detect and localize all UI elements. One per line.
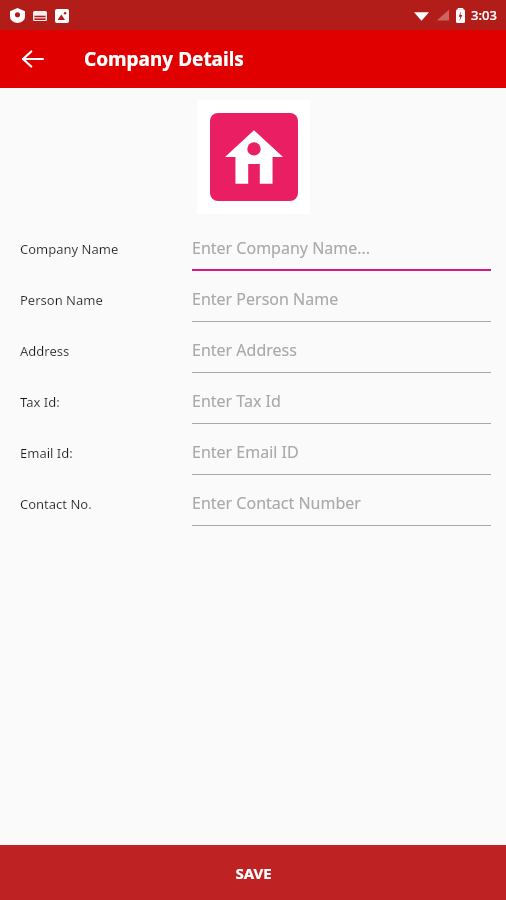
staticText: Enter Address: [192, 339, 297, 361]
staticText: Company Name: [20, 240, 119, 258]
button[interactable]: Contact No.: [0, 481, 506, 532]
button[interactable]: Email Id:: [0, 430, 506, 481]
staticText: Enter Contact Number: [192, 492, 361, 514]
staticText: Contact No.: [20, 495, 92, 513]
staticText: Company Details: [84, 46, 244, 72]
staticText: Enter Tax Id: [192, 390, 281, 412]
staticText: Address: [20, 342, 70, 360]
button[interactable]: Back: [12, 38, 54, 80]
button[interactable]: Company logo: [210, 113, 298, 201]
staticText: Tax Id:: [20, 393, 60, 411]
staticText: Person Name: [20, 291, 103, 309]
button[interactable]: SAVE: [0, 845, 506, 900]
button[interactable]: Tax Id:: [0, 379, 506, 430]
staticText: Enter Email ID: [192, 441, 299, 463]
staticText: 3:03: [471, 6, 497, 24]
staticText: Enter Person Name: [192, 288, 339, 310]
button[interactable]: Person Name: [0, 277, 506, 328]
staticText: Email Id:: [20, 444, 73, 462]
button[interactable]: Address: [0, 328, 506, 379]
staticText: SAVE: [235, 863, 272, 883]
staticText: Enter Company Name...: [192, 237, 371, 259]
button[interactable]: Company Name: [0, 226, 506, 277]
